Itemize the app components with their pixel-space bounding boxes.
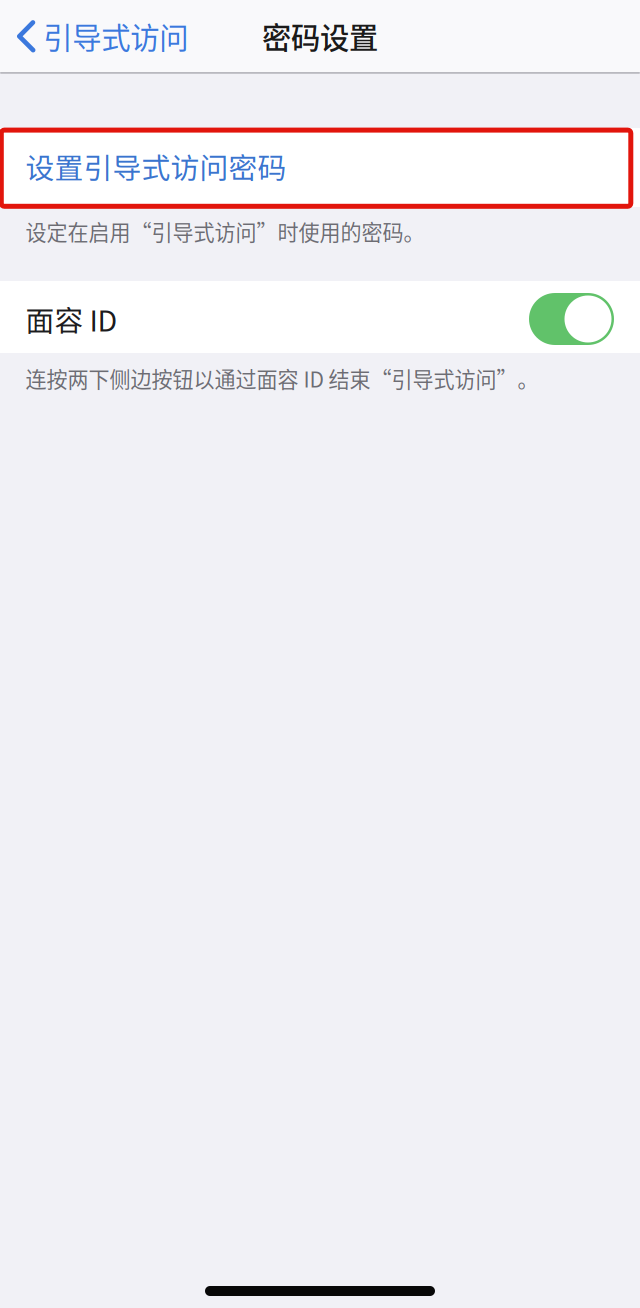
staticText: 密码设置 [262, 15, 378, 57]
button[interactable]: 返回 引导式访问 [0, 0, 202, 72]
button[interactable]: 设置引导式访问密码 [0, 128, 640, 207]
button[interactable]: 面容 ID [0, 281, 640, 353]
staticText: 设置引导式访问密码 [26, 145, 287, 187]
staticText: 连按两下侧边按钮以通过面容 ID 结束“引导式访问”。 [26, 363, 539, 393]
staticText: 引导式访问 [43, 15, 188, 57]
staticText: 面容 ID [26, 298, 118, 340]
staticText: 设定在启用“引导式访问”时使用的密码。 [26, 216, 425, 246]
button[interactable]: 面容 ID [529, 293, 614, 345]
